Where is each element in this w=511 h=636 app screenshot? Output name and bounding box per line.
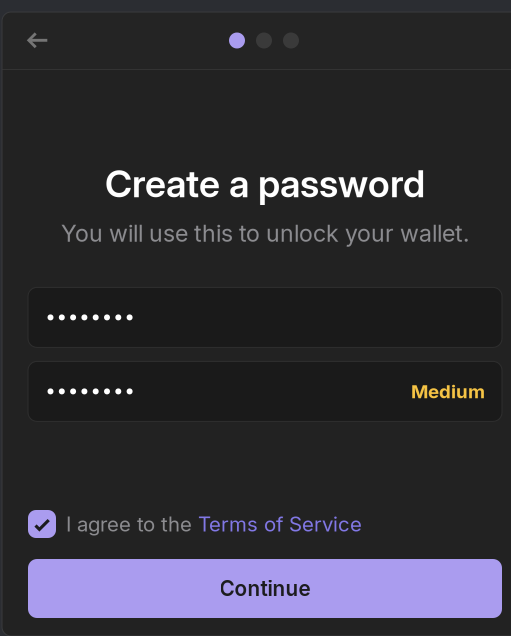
staticText: Continue [219, 576, 310, 601]
staticText: Medium [411, 380, 485, 403]
button[interactable]: Continue [2, 559, 511, 618]
button[interactable]: I agree to the [2, 510, 511, 538]
staticText: Create a password [105, 161, 425, 206]
staticText: I agree to the [66, 512, 198, 536]
staticText: Terms of Service [198, 512, 362, 536]
staticText: You will use this to unlock your wallet. [61, 219, 469, 247]
button[interactable]: Back [15, 18, 59, 62]
